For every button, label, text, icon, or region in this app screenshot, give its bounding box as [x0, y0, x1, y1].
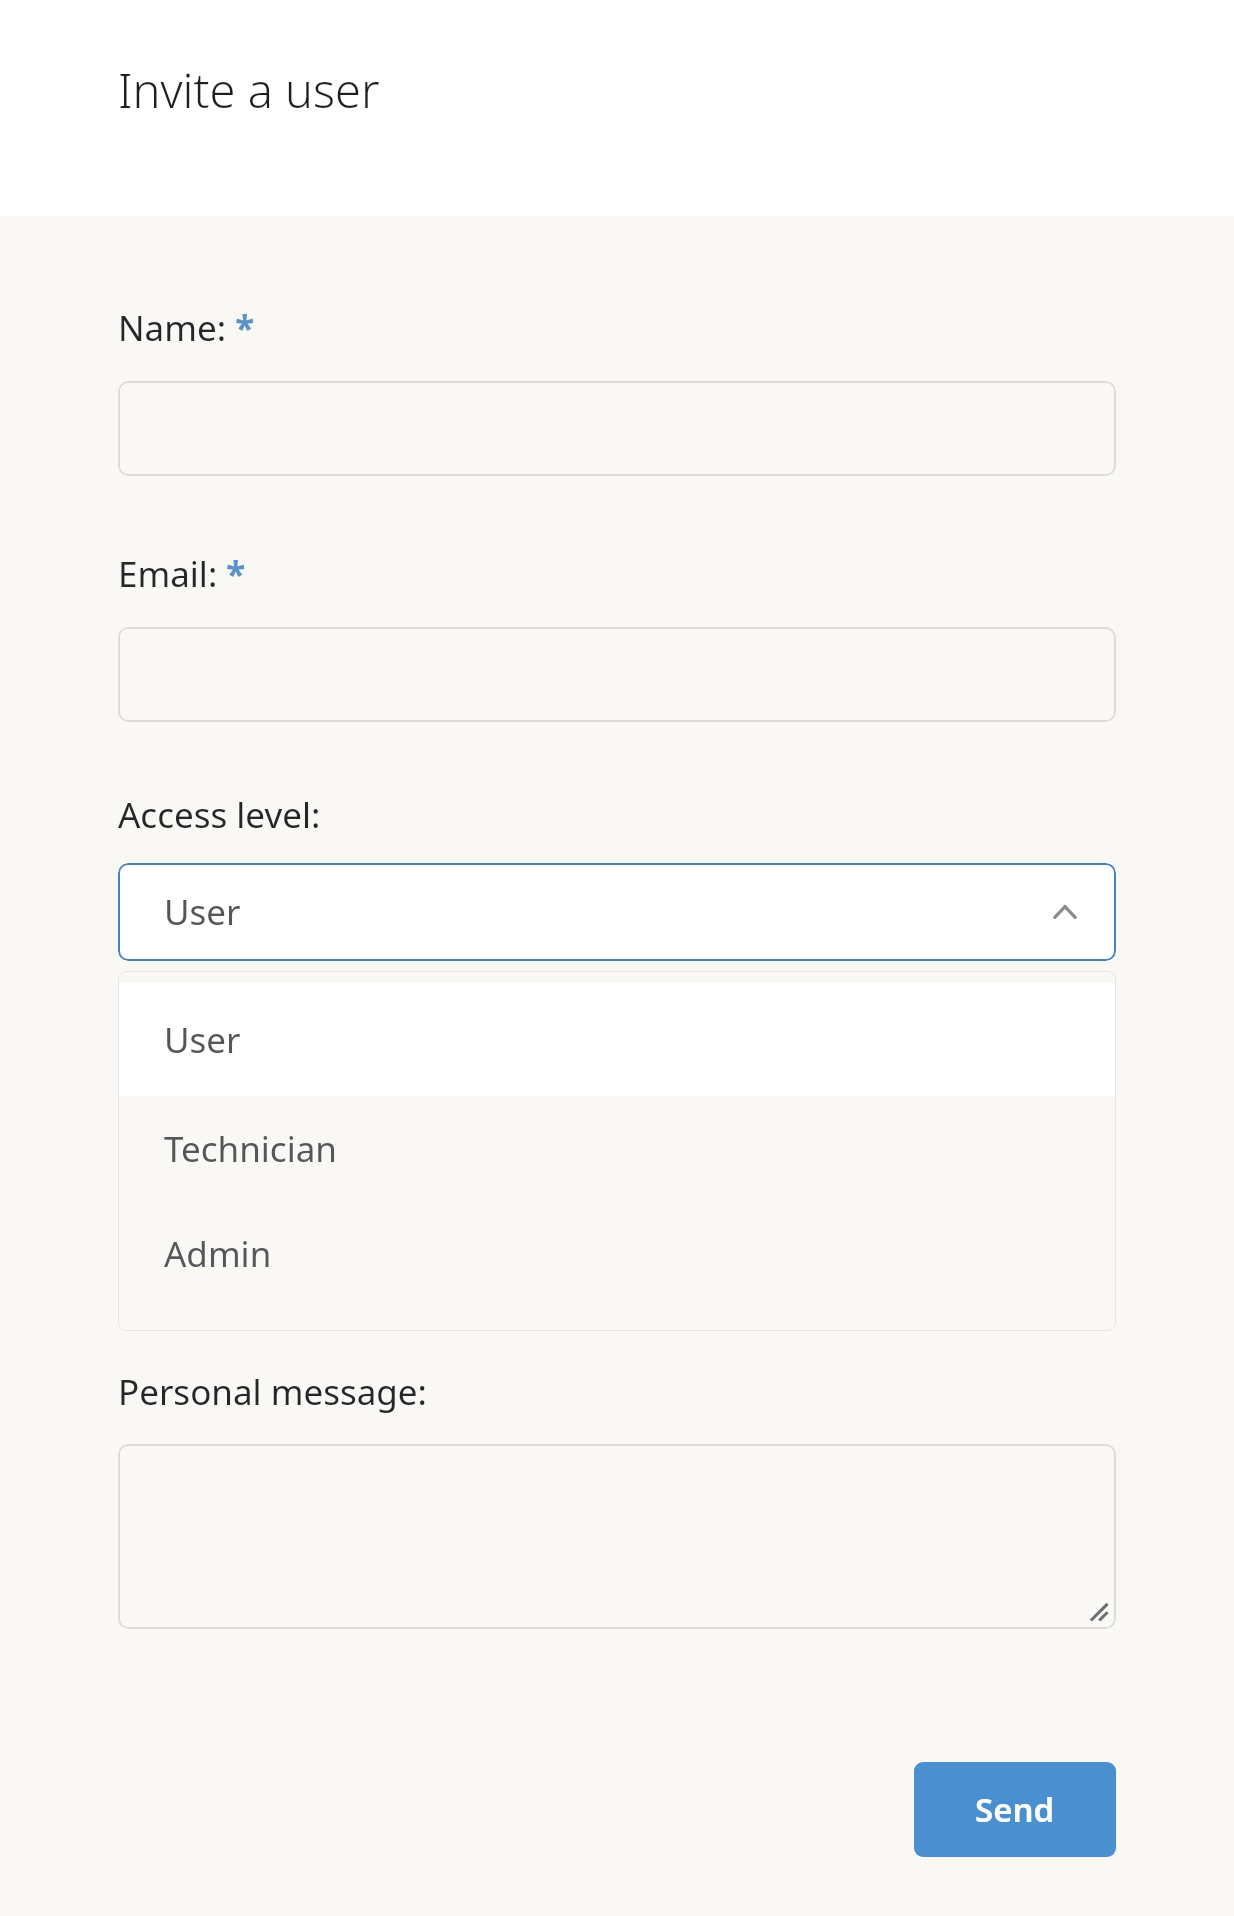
staticText: Access level: [118, 791, 321, 839]
staticText: Send [975, 1787, 1055, 1832]
staticText: Admin [164, 1230, 272, 1278]
staticText: Personal message: [118, 1368, 427, 1416]
button[interactable]: User [118, 863, 1116, 961]
staticText: Name: * [118, 304, 255, 352]
button[interactable] [118, 1444, 1116, 1629]
button[interactable] [118, 627, 1116, 722]
button[interactable]: User [118, 983, 1116, 1096]
button[interactable]: Admin [118, 1201, 1116, 1306]
button[interactable] [118, 381, 1116, 476]
staticText: Email: * [118, 550, 246, 598]
staticText: Invite a user [118, 58, 380, 122]
staticText: Technician [164, 1125, 337, 1173]
staticText: User [164, 1016, 241, 1064]
button[interactable]: Technician [118, 1096, 1116, 1201]
staticText: User [164, 888, 241, 936]
button[interactable]: Send [914, 1762, 1116, 1857]
